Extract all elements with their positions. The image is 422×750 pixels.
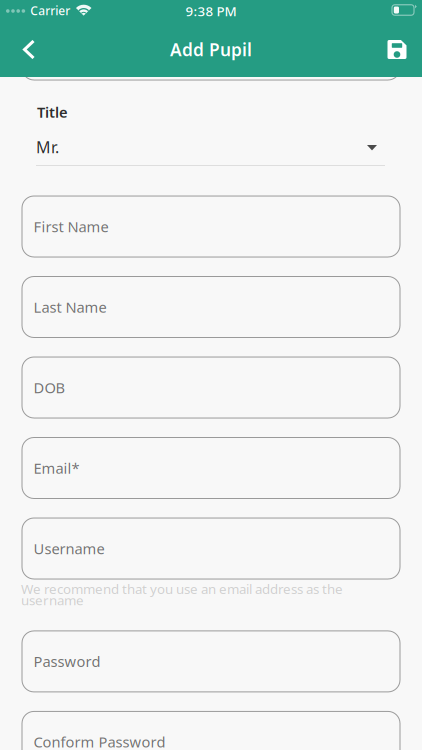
button[interactable]: Conform Password xyxy=(22,711,400,750)
button[interactable]: Password xyxy=(22,631,400,692)
button[interactable]: First Name xyxy=(22,196,400,257)
staticText: 9:38 PM xyxy=(185,2,236,20)
staticText: Conform Password xyxy=(33,732,165,750)
staticText: First Name xyxy=(33,217,108,236)
button[interactable]: Last Name xyxy=(22,276,400,337)
staticText: Username xyxy=(33,539,104,558)
staticText: Title xyxy=(37,102,68,122)
staticText: We recommend that you use an email addre… xyxy=(21,580,343,598)
staticText: Password xyxy=(33,652,100,671)
staticText: Carrier xyxy=(30,2,70,18)
staticText: Email* xyxy=(33,458,79,478)
staticText: Last Name xyxy=(33,297,106,317)
staticText: Mr. xyxy=(36,136,59,158)
staticText: Add Pupil xyxy=(170,38,252,61)
button[interactable]: Email* xyxy=(22,437,400,498)
staticText: username xyxy=(21,591,84,609)
button[interactable]: Save xyxy=(375,26,419,72)
button[interactable]: Mr. xyxy=(36,140,385,166)
staticText: DOB xyxy=(33,378,65,397)
button[interactable]: DOB xyxy=(22,357,400,418)
button[interactable]: Back xyxy=(7,26,51,72)
button[interactable]: Username xyxy=(22,518,400,579)
